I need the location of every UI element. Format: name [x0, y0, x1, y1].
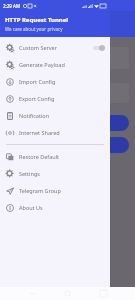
staticText: 2:29 AM	[3, 3, 21, 9]
staticText: HTTP Request Tunnel	[5, 16, 69, 24]
button[interactable]: Notification	[0, 107, 110, 124]
button[interactable]: Telegram Group	[0, 182, 110, 199]
staticText: Settings	[19, 170, 40, 177]
staticText: Generate Payload	[19, 61, 65, 68]
staticText: We care about your privacy	[5, 26, 63, 32]
button[interactable]: Settings	[0, 165, 110, 182]
staticText: Custom Server	[19, 44, 57, 51]
staticText: Export Config	[19, 95, 55, 102]
button[interactable]: Internet Shared	[0, 124, 110, 141]
button[interactable]: Custom Server	[0, 39, 110, 56]
staticText: Notification	[19, 112, 50, 119]
button[interactable]: Generate Payload	[0, 56, 110, 73]
button[interactable]: Restore Default	[0, 148, 110, 165]
button[interactable]: Import Config	[0, 73, 110, 90]
staticText: Internet Shared	[19, 129, 60, 136]
staticText: About Us	[19, 204, 43, 211]
staticText: Telegram Group	[19, 187, 61, 194]
staticText: Restore Default	[19, 153, 60, 160]
button[interactable]: Export Config	[0, 90, 110, 107]
button[interactable]: About Us	[0, 199, 110, 216]
staticText: Import Config	[19, 78, 56, 85]
